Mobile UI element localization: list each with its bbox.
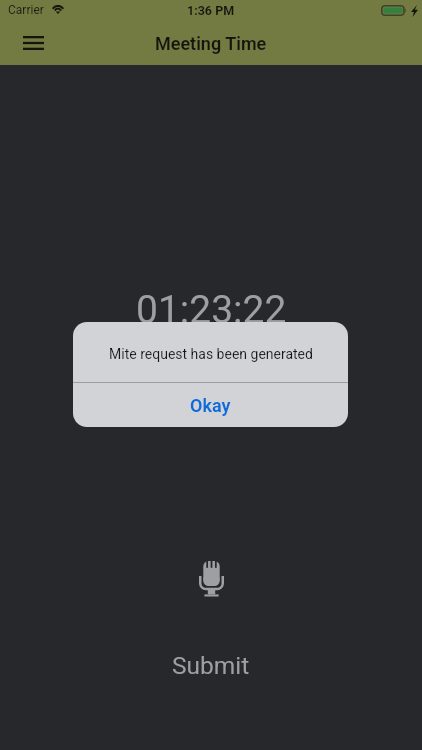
button[interactable]: Okay	[73, 383, 348, 427]
staticText: Carrier	[8, 3, 44, 17]
staticText: 1:36 PM	[187, 3, 235, 18]
staticText: 01:23:22	[136, 287, 287, 333]
button[interactable]: Menu	[14, 24, 52, 62]
staticText: Okay	[190, 395, 231, 416]
staticText: Mite request has been generated	[109, 346, 313, 362]
button[interactable]: Record audio	[186, 551, 236, 606]
staticText: Submit	[172, 651, 250, 680]
staticText: Meeting Time	[155, 33, 267, 54]
button[interactable]: Submit	[141, 643, 281, 687]
